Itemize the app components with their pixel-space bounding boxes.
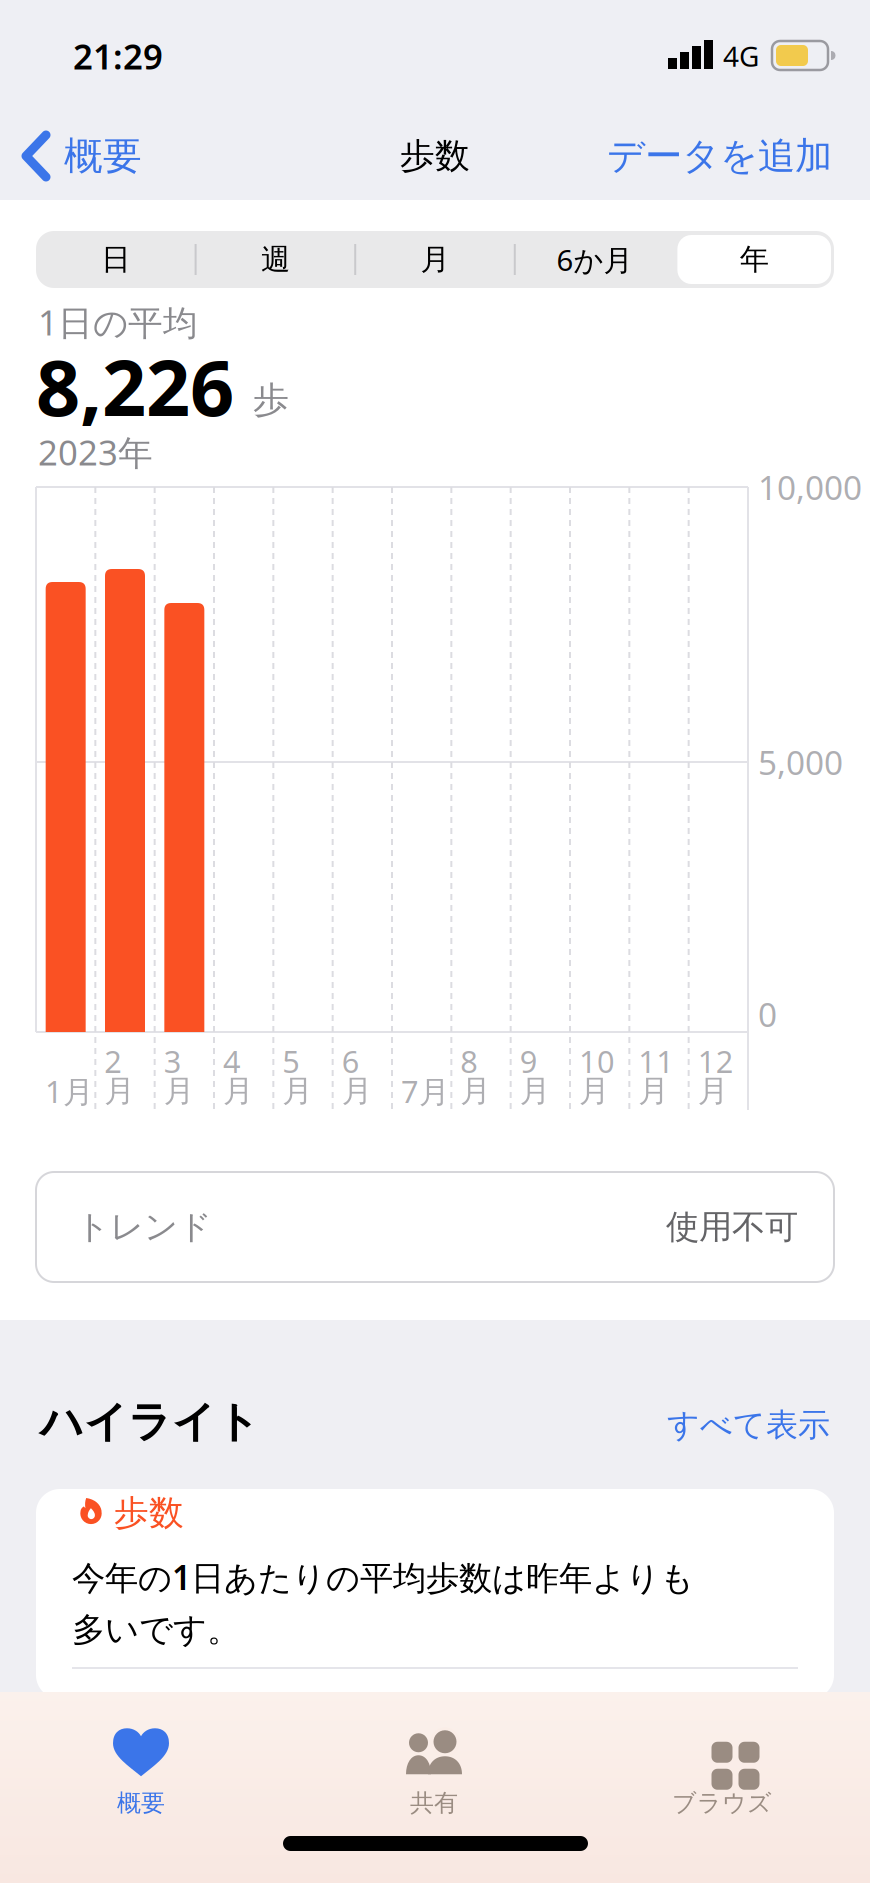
- staticText: 7月: [401, 1071, 450, 1111]
- staticText: 歩: [253, 378, 289, 422]
- staticText: 今年の1日あたりの平均歩数は昨年よりも: [72, 1555, 694, 1599]
- staticText: 4: [223, 1041, 241, 1081]
- staticText: 11: [638, 1041, 674, 1081]
- staticText: ハイライト: [40, 1396, 260, 1448]
- staticText: 概要: [117, 1788, 165, 1818]
- staticText: 6か月: [557, 240, 633, 279]
- staticText: 月: [282, 1072, 313, 1110]
- button[interactable]: 週: [196, 231, 355, 288]
- staticText: 共有: [410, 1788, 458, 1818]
- staticText: 5,000: [758, 740, 843, 784]
- button[interactable]: データを追加: [532, 126, 832, 186]
- staticText: 9: [520, 1041, 538, 1081]
- staticText: 月: [579, 1072, 610, 1110]
- button[interactable]: 月: [355, 231, 515, 288]
- staticText: 月: [342, 1072, 373, 1110]
- staticText: 月: [520, 1072, 551, 1110]
- button[interactable]: 6か月: [515, 231, 674, 288]
- staticText: 月: [104, 1072, 135, 1110]
- button[interactable]: 共有: [324, 1712, 544, 1832]
- staticText: 8,226: [36, 335, 234, 437]
- staticText: 1月: [45, 1071, 94, 1111]
- button[interactable]: 日: [36, 231, 196, 288]
- staticText: 年: [740, 241, 769, 277]
- staticText: 21:29: [73, 33, 163, 79]
- staticText: 8: [460, 1041, 478, 1081]
- button[interactable]: 年: [674, 231, 834, 288]
- button[interactable]: 歩数: [36, 1489, 834, 1699]
- staticText: 月: [223, 1072, 254, 1110]
- staticText: トレンド: [76, 1206, 212, 1247]
- staticText: 5: [282, 1041, 300, 1081]
- staticText: 0: [758, 992, 777, 1036]
- staticText: 月: [460, 1072, 491, 1110]
- staticText: 月: [164, 1072, 195, 1110]
- staticText: 12: [698, 1041, 734, 1081]
- staticText: 月: [638, 1072, 669, 1110]
- staticText: 歩数: [114, 1492, 184, 1534]
- staticText: 6: [342, 1041, 360, 1081]
- staticText: 月: [420, 241, 449, 277]
- staticText: 週: [261, 241, 290, 277]
- button[interactable]: 概要: [31, 1712, 251, 1832]
- staticText: 3: [164, 1041, 182, 1081]
- button[interactable]: Back: [22, 126, 202, 186]
- staticText: 2023年: [38, 429, 153, 475]
- button[interactable]: すべて表示: [530, 1398, 830, 1452]
- staticText: データを追加: [607, 133, 832, 179]
- staticText: 10,000: [758, 465, 862, 509]
- staticText: 歩数: [400, 135, 470, 177]
- staticText: 使用不可: [666, 1206, 798, 1247]
- staticText: 1日の平均: [38, 299, 198, 345]
- staticText: 月: [698, 1072, 729, 1110]
- staticText: 4G: [723, 37, 759, 75]
- staticText: 2: [104, 1041, 122, 1081]
- staticText: 概要: [64, 132, 142, 180]
- staticText: 多いです。: [72, 1609, 240, 1650]
- button[interactable]: ブラウズ: [612, 1712, 832, 1832]
- staticText: 日: [101, 241, 130, 277]
- staticText: ブラウズ: [672, 1788, 772, 1818]
- staticText: 10: [579, 1041, 615, 1081]
- staticText: すべて表示: [667, 1405, 830, 1445]
